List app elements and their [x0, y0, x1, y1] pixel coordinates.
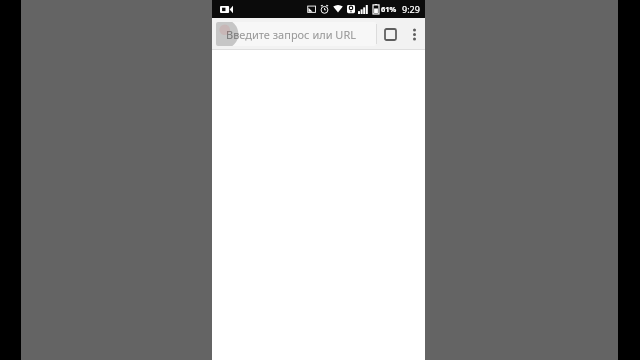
staticText: 61% — [381, 4, 397, 14]
button[interactable]: Switch tabs — [377, 18, 403, 50]
button[interactable]: More options — [403, 18, 425, 50]
staticText: Введите запрос или URL — [226, 27, 357, 42]
button[interactable]: Введите запрос или URL — [216, 22, 376, 46]
staticText: 9:29 — [402, 3, 420, 15]
